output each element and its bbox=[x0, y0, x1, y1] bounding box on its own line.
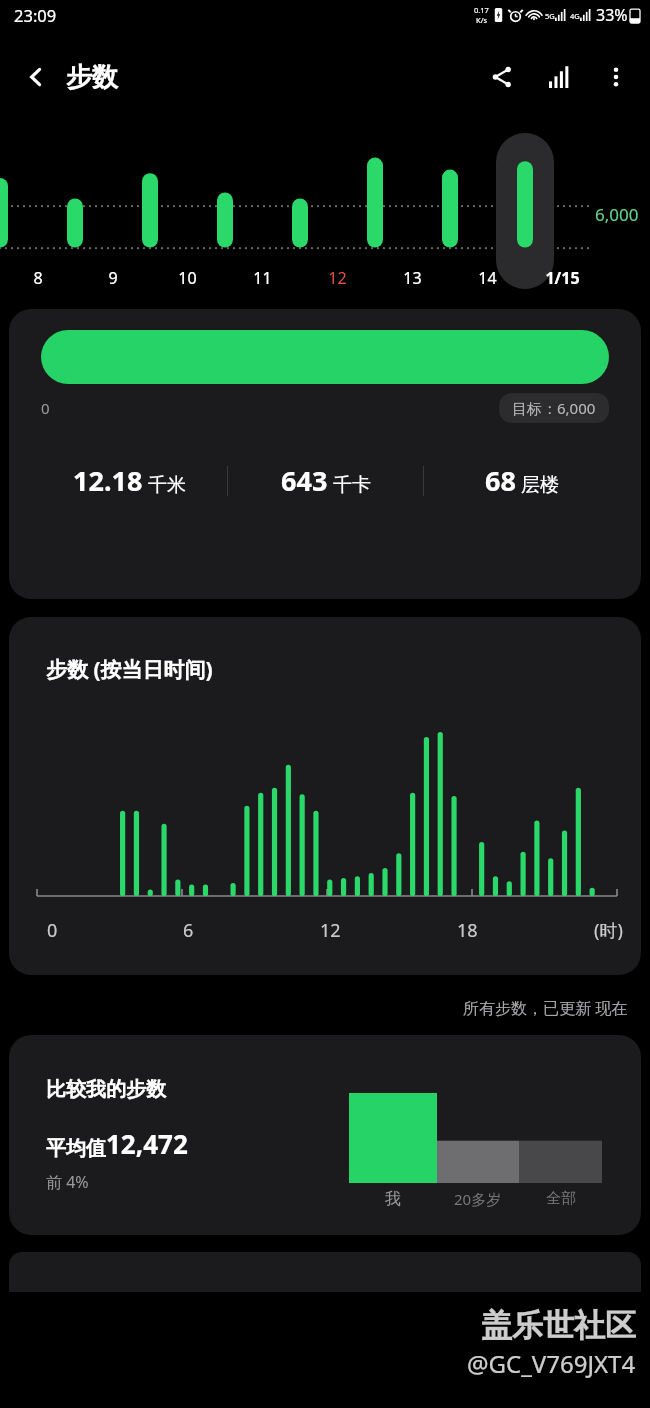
staticText: 目标：6,000 bbox=[512, 398, 596, 418]
button[interactable]: Share bbox=[478, 53, 526, 101]
staticText: 6,000 bbox=[595, 203, 639, 226]
staticText: 8 bbox=[33, 267, 43, 289]
staticText: 14 bbox=[478, 267, 497, 289]
staticText: 所有步数，已更新 现在 bbox=[463, 997, 628, 1019]
staticText: 0.17 bbox=[474, 5, 489, 15]
staticText: 步数 (按当日时间) bbox=[46, 655, 213, 684]
staticText: 盖乐世社区 bbox=[481, 1306, 636, 1345]
staticText: 20多岁 bbox=[454, 1189, 502, 1209]
staticText: 12 bbox=[320, 918, 457, 943]
staticText: 步数 bbox=[66, 61, 118, 94]
staticText: 0 bbox=[41, 398, 50, 418]
staticText: 平均值 bbox=[46, 1136, 106, 1161]
staticText: 33% bbox=[596, 4, 628, 26]
staticText: 18 bbox=[457, 918, 594, 943]
staticText: 1/15 bbox=[545, 267, 580, 289]
staticText: 68 bbox=[485, 462, 516, 499]
staticText: 11 bbox=[253, 267, 272, 289]
staticText: 9 bbox=[108, 267, 118, 289]
button[interactable]: 比较我的步数 bbox=[9, 1035, 641, 1235]
staticText: (时) bbox=[594, 918, 623, 943]
button[interactable]: 步数 (按当日时间) bbox=[9, 617, 641, 975]
staticText: 前 4% bbox=[46, 1171, 89, 1193]
staticText: 千卡 bbox=[333, 473, 371, 497]
button[interactable]: Chart bbox=[536, 53, 584, 101]
staticText: 比较我的步数 bbox=[46, 1077, 166, 1102]
button[interactable]: More options bbox=[592, 53, 640, 101]
staticText: 4G bbox=[570, 11, 580, 21]
button[interactable]: 0 bbox=[9, 309, 641, 599]
staticText: 23:09 bbox=[14, 4, 57, 26]
staticText: 5G bbox=[545, 11, 555, 21]
staticText: 643 bbox=[281, 462, 328, 499]
staticText: 0 bbox=[47, 918, 183, 943]
button[interactable]: Back bbox=[12, 53, 60, 101]
staticText: 6 bbox=[183, 918, 320, 943]
staticText: 12,472 bbox=[106, 1126, 188, 1161]
staticText: 12.18 bbox=[73, 462, 143, 499]
staticText: 12 bbox=[328, 267, 347, 289]
staticText: 我 bbox=[385, 1189, 401, 1209]
staticText: K/s bbox=[476, 15, 488, 25]
staticText: 13 bbox=[403, 267, 422, 289]
staticText: 层楼 bbox=[521, 473, 559, 497]
staticText: 10 bbox=[178, 267, 197, 289]
staticText: @GC_V769JXT4 bbox=[467, 1347, 636, 1380]
staticText: 千米 bbox=[148, 473, 186, 497]
staticText: 全部 bbox=[546, 1189, 576, 1208]
